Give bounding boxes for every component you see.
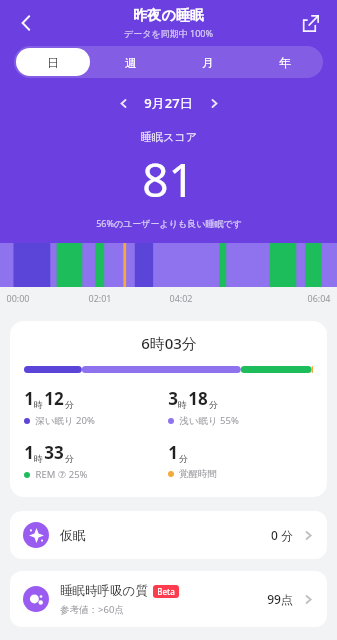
staticText: 18 — [188, 387, 208, 410]
staticText: 分 — [65, 399, 74, 410]
staticText: 00:00 — [6, 292, 30, 304]
button[interactable]: 6時03分 — [10, 321, 327, 497]
staticText: 33 — [44, 441, 64, 464]
staticText: 0 分 — [271, 527, 293, 543]
staticText: 9月27日 — [144, 94, 193, 112]
staticText: 仮眠 — [60, 527, 86, 543]
button[interactable]: 月 — [171, 48, 244, 76]
staticText: 分 — [65, 453, 74, 464]
staticText: 昨夜の睡眠 — [133, 7, 204, 25]
staticText: 04:02 — [169, 292, 193, 304]
staticText: 06:04 — [307, 292, 331, 304]
staticText: 56%のユーザーよりも良い睡眠です — [96, 217, 242, 229]
button[interactable]: 日 — [16, 48, 90, 76]
button[interactable]: Next day — [201, 90, 227, 116]
staticText: 深い眠り 20% — [35, 414, 95, 427]
staticText: 時 — [34, 399, 43, 410]
staticText: 99点 — [267, 591, 293, 607]
staticText: データを同期中 100% — [124, 27, 213, 39]
staticText: 覚醒時間 — [179, 468, 217, 480]
button[interactable]: 週 — [94, 48, 167, 76]
staticText: 日 — [47, 55, 59, 70]
staticText: 分 — [179, 453, 188, 464]
button[interactable]: Share — [291, 4, 329, 42]
staticText: 3 — [168, 387, 178, 410]
button[interactable]: Back — [6, 3, 46, 43]
staticText: 1 — [168, 441, 178, 464]
staticText: 睡眠スコア — [141, 130, 197, 144]
staticText: 月 — [202, 55, 214, 70]
staticText: 睡眠時呼吸の質 — [60, 583, 148, 599]
staticText: 81 — [142, 148, 195, 211]
staticText: 時 — [34, 453, 43, 464]
button[interactable]: Previous day — [110, 90, 136, 116]
staticText: 時 — [178, 399, 187, 410]
staticText: Beta — [157, 586, 175, 597]
staticText: REM ⑦ 25% — [35, 468, 88, 481]
staticText: 分 — [209, 399, 218, 410]
staticText: 02:01 — [88, 292, 112, 304]
staticText: 週 — [125, 55, 137, 70]
button[interactable]: 仮眠 — [10, 511, 327, 559]
staticText: 6時03分 — [141, 333, 197, 353]
staticText: 1 — [24, 387, 34, 410]
staticText: 参考値：>60点 — [60, 603, 124, 616]
staticText: 年 — [279, 55, 291, 70]
staticText: 12 — [44, 387, 64, 410]
button[interactable]: 年 — [248, 48, 321, 76]
staticText: 浅い眠り 55% — [179, 414, 239, 427]
button[interactable]: 睡眠時呼吸の質 — [10, 571, 327, 627]
staticText: 1 — [24, 441, 34, 464]
